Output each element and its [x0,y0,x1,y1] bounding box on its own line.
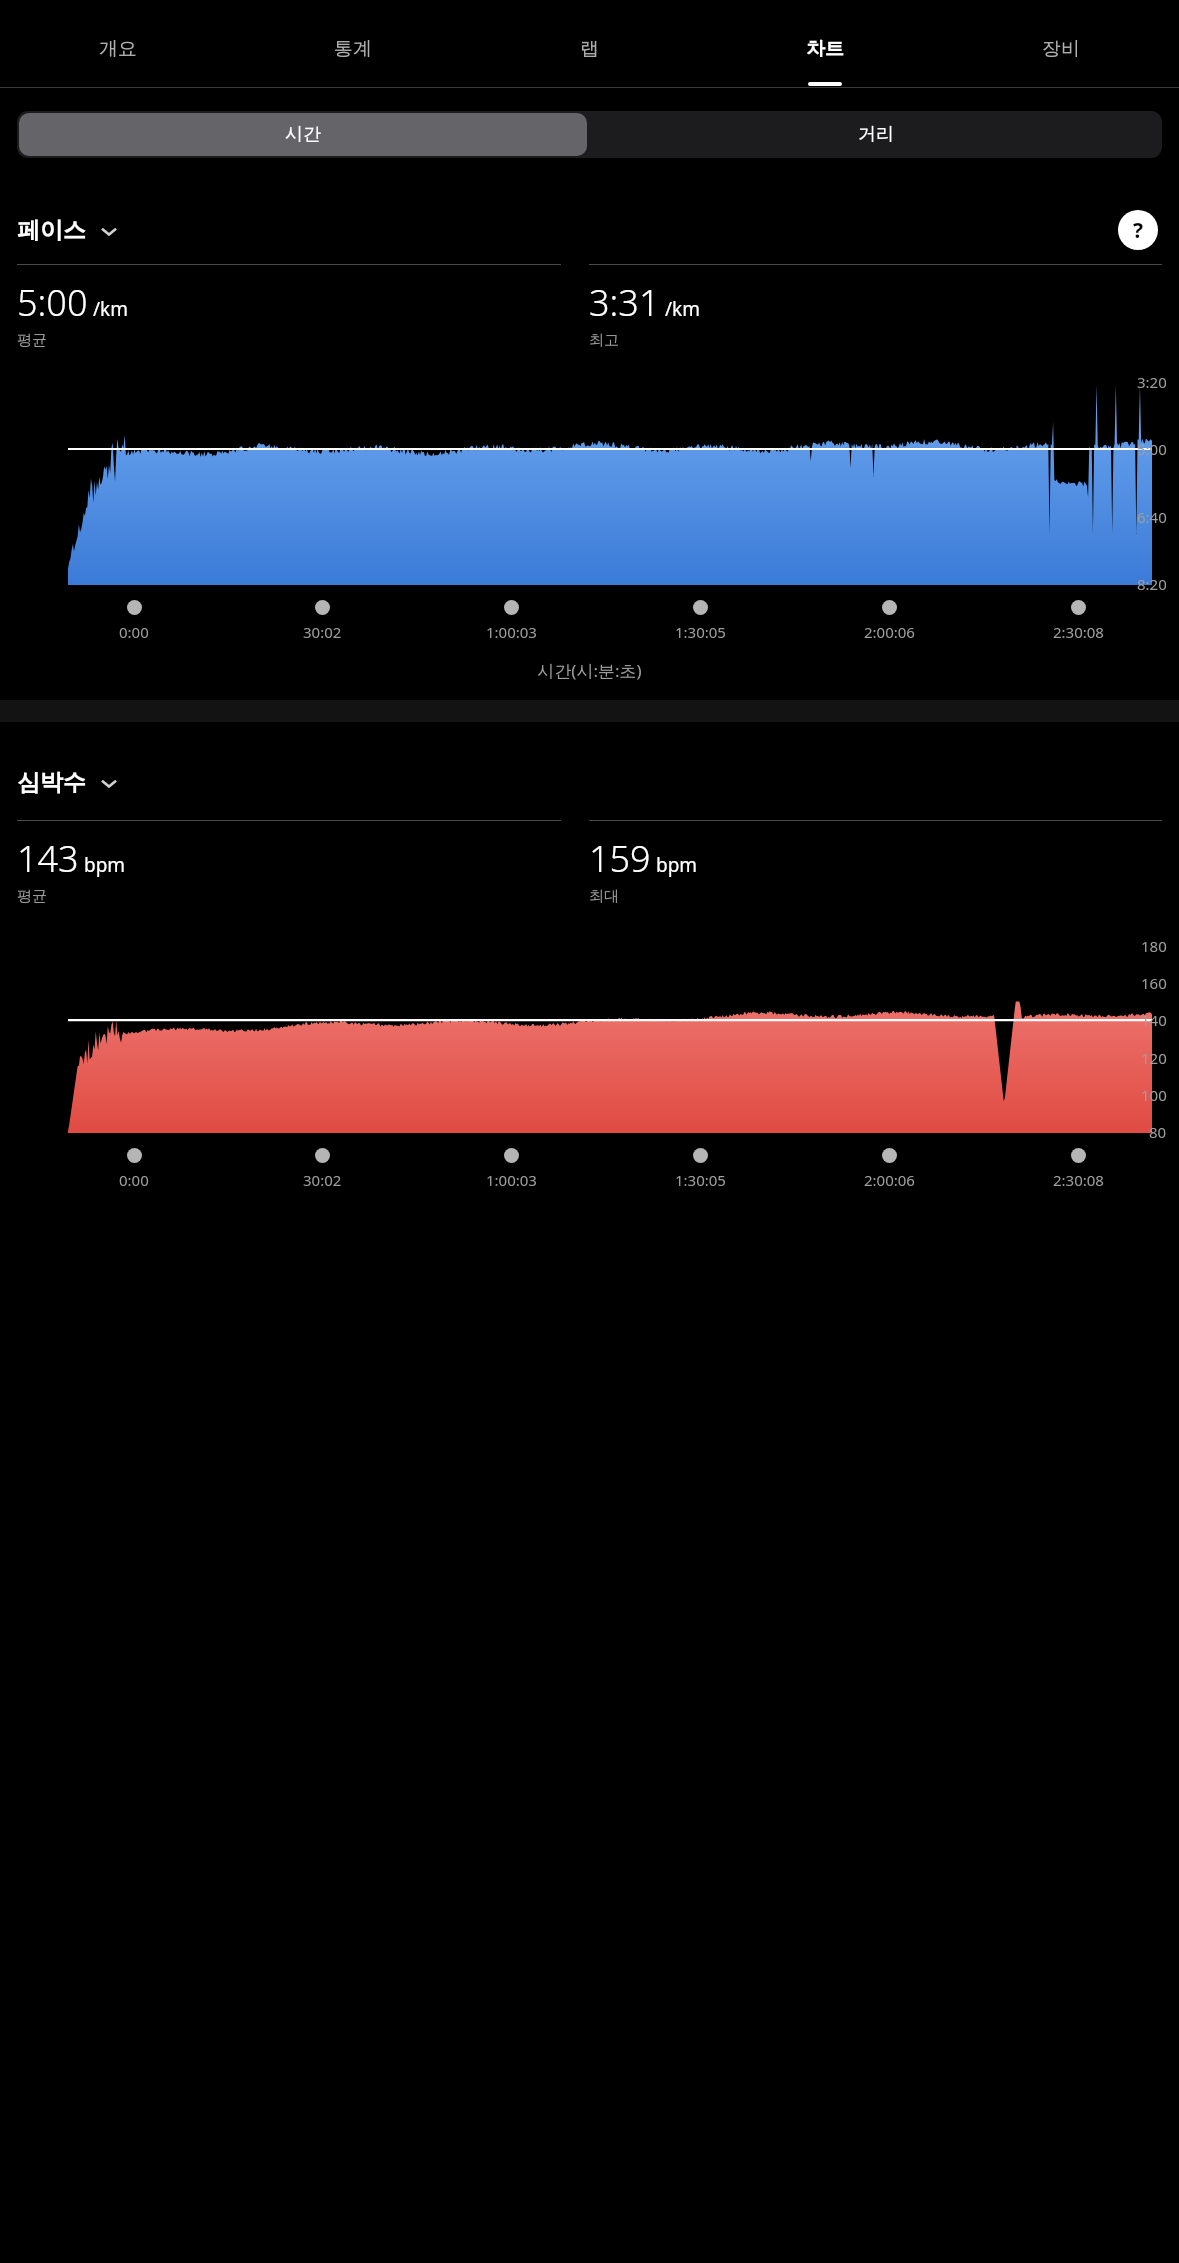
staticText: 2:00:06 [864,1170,915,1190]
staticText: 6:40 [1137,507,1167,527]
staticText: bpm [656,852,698,878]
staticText: /km [93,296,128,322]
button[interactable]: 랩 [471,10,707,87]
staticText: 거리 [858,123,894,146]
staticText: 30:02 [303,622,342,642]
button[interactable]: 장비 [943,10,1179,87]
button[interactable]: 심박수 [17,768,120,797]
staticText: 1:30:05 [675,622,726,642]
staticText: 100 [1141,1085,1167,1105]
staticText: 80 [1149,1122,1167,1142]
staticText: 최대 [589,887,619,906]
staticText: 140 [1141,1010,1167,1030]
staticText: 심박수 [17,768,86,797]
staticText: 5:00 [17,278,88,327]
staticText: 통계 [334,37,372,61]
staticText: 1:00:03 [486,1170,537,1190]
button[interactable]: 차트 [707,10,943,87]
button[interactable]: 도움말 [1118,210,1158,250]
button[interactable]: 통계 [235,10,471,87]
staticText: 3:31 [589,278,660,327]
staticText: 120 [1141,1048,1167,1068]
staticText: 159 [589,834,651,883]
staticText: 5:00 [1137,439,1167,459]
staticText: 최고 [589,331,619,350]
staticText: 2:00:06 [864,622,915,642]
staticText: 시간(시:분:초) [537,659,642,682]
staticText: 2:30:08 [1053,1170,1104,1190]
staticText: 0:00 [119,1170,149,1190]
staticText: 1:30:05 [675,1170,726,1190]
staticText: 160 [1141,973,1167,993]
button[interactable]: 페이스 [17,216,120,245]
staticText: 1:00:03 [486,622,537,642]
staticText: 3:20 [1137,372,1167,392]
button[interactable]: 시간 [19,113,587,156]
staticText: 페이스 [17,216,86,245]
staticText: 143 [17,834,79,883]
staticText: bpm [84,852,126,878]
staticText: 180 [1141,936,1167,956]
staticText: /km [665,296,700,322]
staticText: 평균 [17,331,47,350]
button[interactable]: 개요 [0,10,235,87]
button[interactable]: 거리 [589,111,1162,158]
staticText: 0:00 [119,622,149,642]
staticText: 8:20 [1137,574,1167,594]
staticText: 개요 [99,37,137,61]
staticText: 30:02 [303,1170,342,1190]
staticText: 랩 [580,37,599,61]
staticText: ? [1133,216,1144,245]
staticText: 2:30:08 [1053,622,1104,642]
staticText: 시간 [285,123,321,146]
staticText: 차트 [806,37,844,61]
staticText: 평균 [17,887,47,906]
staticText: 장비 [1042,37,1080,61]
